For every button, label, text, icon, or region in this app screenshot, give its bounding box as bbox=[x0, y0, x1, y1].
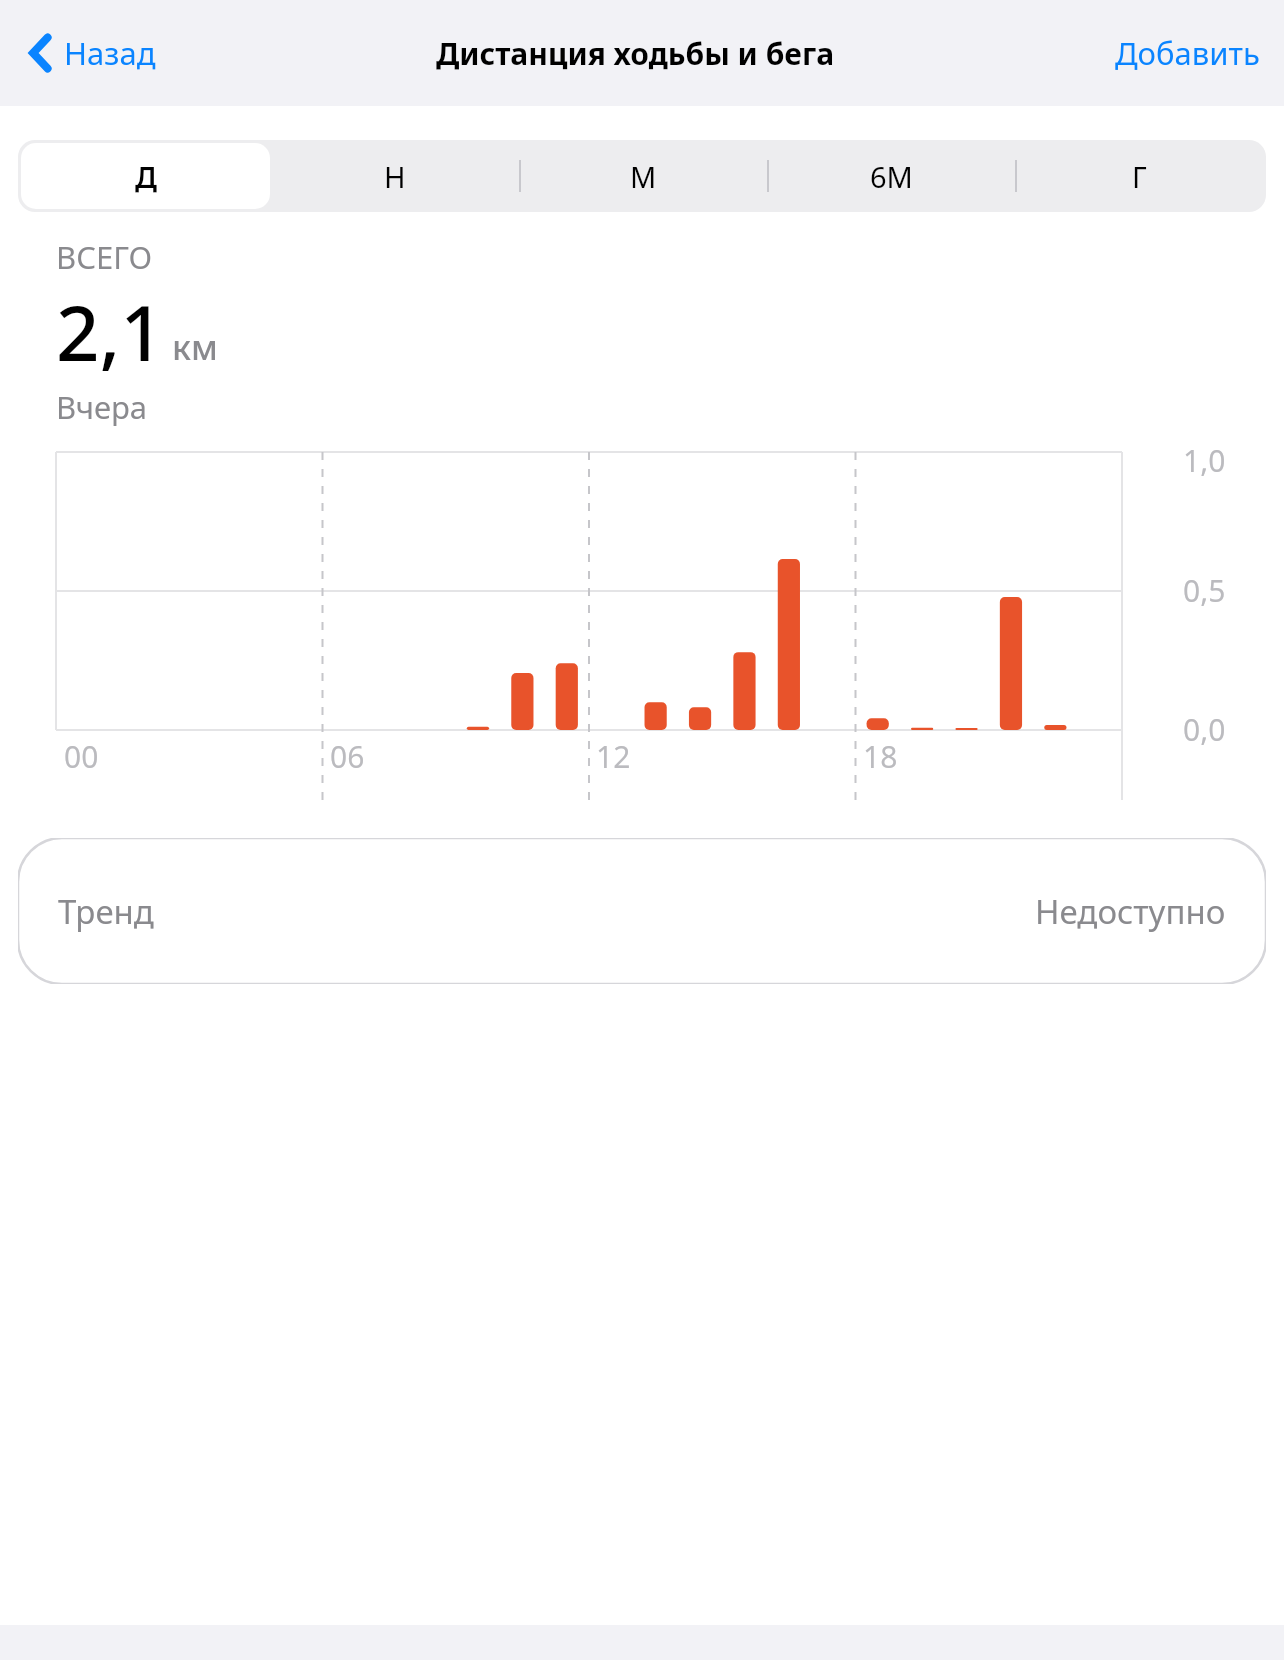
staticText: Г bbox=[1132, 157, 1147, 196]
staticText: 18 bbox=[863, 736, 898, 777]
button[interactable]: Назад bbox=[26, 22, 160, 84]
staticText: Вчера bbox=[56, 386, 148, 428]
staticText: Добавить bbox=[1115, 32, 1260, 74]
staticText: Н bbox=[384, 157, 406, 196]
staticText: км bbox=[172, 324, 218, 370]
button[interactable]: Тренд bbox=[18, 838, 1266, 984]
staticText: Дистанция ходьбы и бега bbox=[436, 33, 835, 74]
button[interactable]: 6М bbox=[767, 143, 1015, 209]
staticText: 0,0 bbox=[1183, 709, 1226, 750]
button[interactable]: Добавить bbox=[1111, 22, 1264, 84]
staticText: 06 bbox=[330, 736, 365, 777]
staticText: 2,1 bbox=[56, 280, 164, 384]
button[interactable]: Н bbox=[270, 143, 519, 209]
staticText: 0,5 bbox=[1183, 570, 1226, 611]
staticText: 12 bbox=[596, 736, 631, 777]
staticText: Назад bbox=[64, 32, 156, 74]
staticText: Д bbox=[135, 157, 157, 196]
staticText: 1,0 bbox=[1183, 440, 1226, 481]
staticText: 00 bbox=[64, 736, 99, 777]
button[interactable]: М bbox=[519, 143, 767, 209]
staticText: Недоступно bbox=[1035, 889, 1226, 934]
button[interactable]: Д bbox=[21, 143, 270, 209]
staticText: М bbox=[630, 157, 657, 196]
button[interactable]: Г bbox=[1015, 143, 1263, 209]
staticText: 6М bbox=[870, 157, 913, 196]
staticText: ВСЕГО bbox=[56, 236, 152, 278]
staticText: Тренд bbox=[58, 889, 154, 934]
